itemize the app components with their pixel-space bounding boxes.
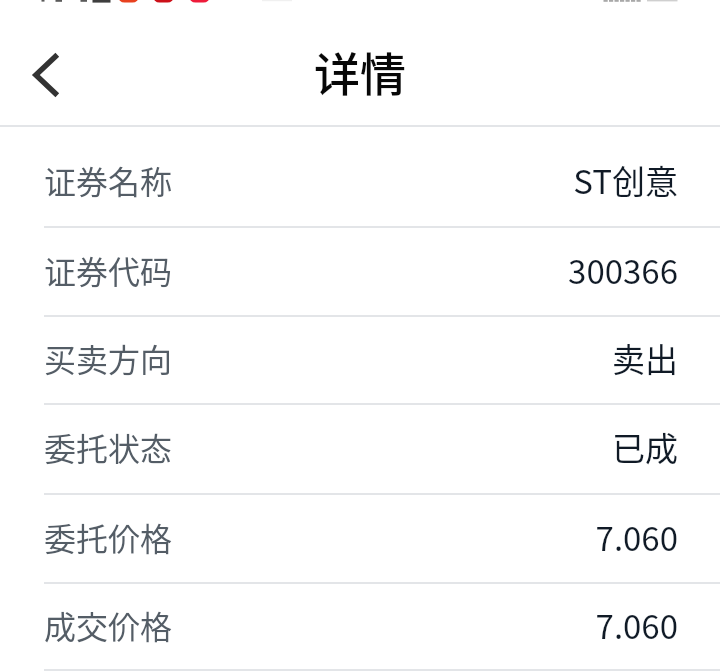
staticText: ST创意 [573, 156, 678, 204]
staticText: 成交价格 [44, 602, 173, 648]
staticText: 7.060 [595, 601, 678, 649]
button[interactable]: 成交价格 [0, 584, 720, 671]
staticText: 买卖方向 [44, 335, 173, 381]
staticText: 7.060 [595, 513, 678, 561]
staticText: 证券名称 [44, 157, 173, 203]
staticText: 已成 [612, 423, 678, 471]
button[interactable]: 证券名称 [0, 137, 720, 228]
button[interactable]: 证券代码 [0, 228, 720, 317]
button[interactable]: Back [13, 37, 79, 103]
button[interactable]: 委托状态 [0, 405, 720, 495]
staticText: 300366 [568, 246, 678, 294]
staticText: 详情 [314, 38, 406, 105]
staticText: 卖出 [612, 334, 678, 382]
staticText: 证券代码 [44, 247, 173, 293]
staticText: 委托状态 [44, 424, 173, 470]
button[interactable]: 买卖方向 [0, 317, 720, 405]
staticText: 委托价格 [44, 514, 173, 560]
button[interactable]: 委托价格 [0, 495, 720, 584]
